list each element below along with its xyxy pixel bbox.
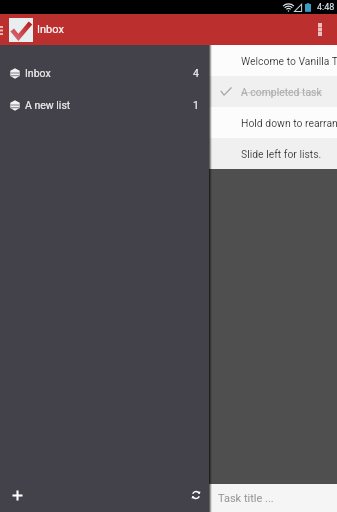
staticText: 1 bbox=[193, 99, 199, 111]
staticText: 4 bbox=[193, 67, 199, 79]
staticText: Hold down to rearrange. bbox=[241, 117, 337, 129]
staticText: Inbox bbox=[25, 67, 51, 79]
button[interactable]: Hold down to rearrange. bbox=[0, 107, 337, 138]
button[interactable]: Open navigation drawer bbox=[0, 18, 6, 42]
button[interactable]: A new list bbox=[0, 89, 209, 121]
button[interactable]: Task title ... bbox=[0, 484, 337, 512]
staticText: Welcome to Vanilla Tasks! bbox=[241, 55, 337, 67]
button[interactable]: Inbox bbox=[0, 57, 209, 89]
staticText: Inbox bbox=[37, 23, 64, 36]
staticText: Task title ... bbox=[218, 492, 274, 505]
staticText: 4:48 bbox=[317, 2, 335, 13]
button[interactable]: Welcome to Vanilla Tasks! bbox=[0, 45, 337, 76]
button[interactable]: Sync bbox=[179, 478, 213, 512]
staticText: Slide left for lists. bbox=[241, 148, 322, 160]
staticText: A completed task bbox=[241, 86, 322, 98]
button[interactable]: Add list bbox=[0, 478, 34, 512]
staticText: A new list bbox=[25, 99, 71, 111]
button[interactable]: Slide left for lists. bbox=[0, 138, 337, 169]
button[interactable]: A completed task bbox=[0, 76, 337, 107]
button[interactable]: More options bbox=[308, 14, 332, 45]
